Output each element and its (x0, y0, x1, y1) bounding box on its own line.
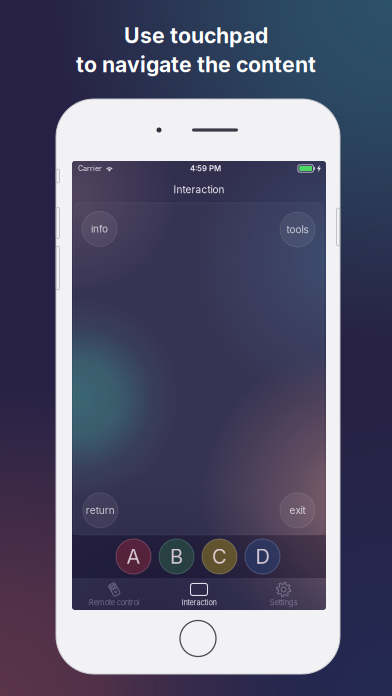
button[interactable]: Settings (241, 578, 326, 610)
staticText: info (91, 223, 108, 235)
staticText: Remote control (89, 598, 140, 607)
button[interactable]: D (245, 539, 280, 574)
button[interactable]: exit (280, 493, 315, 528)
button[interactable]: B (159, 539, 194, 574)
staticText: tools (287, 224, 309, 236)
staticText: B (170, 544, 183, 569)
button[interactable]: tools (280, 212, 315, 247)
staticText: Settings (270, 598, 298, 607)
staticText: Interaction (173, 183, 224, 196)
staticText: 4:59 PM (190, 164, 221, 173)
button[interactable]: Interaction (157, 578, 241, 610)
staticText: Interaction (181, 598, 216, 607)
staticText: D (255, 544, 269, 569)
staticText: exit (289, 504, 305, 516)
button[interactable]: Remote control (72, 578, 157, 610)
staticText: Carrier (78, 164, 102, 173)
staticText: to navigate the content (76, 51, 316, 77)
button[interactable]: return (83, 493, 118, 528)
button[interactable]: C (202, 539, 237, 574)
button[interactable]: A (116, 539, 151, 574)
button[interactable]: info (82, 211, 117, 246)
staticText: Use touchpad (124, 23, 268, 48)
staticText: C (212, 544, 227, 569)
staticText: A (126, 544, 140, 569)
staticText: return (86, 504, 115, 516)
